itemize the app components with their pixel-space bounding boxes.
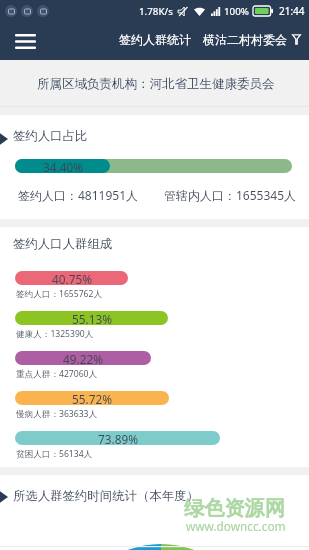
button[interactable]: 49.22%: [15, 351, 151, 365]
staticText: 横沽二村村委会: [203, 32, 287, 47]
button[interactable]: 55.72%: [15, 391, 169, 405]
staticText: 签约人口人群组成: [13, 236, 113, 252]
staticText: 重点人群：427060人: [16, 368, 98, 380]
button[interactable]: 40.75%: [15, 271, 128, 285]
staticText: 签约人口占比: [13, 128, 88, 144]
staticText: 健康人：1325390人: [16, 328, 94, 340]
staticText: 管辖内人口：1655345人: [164, 187, 297, 203]
staticText: 21:44: [279, 4, 305, 18]
button[interactable]: 横沽二村村委会: [203, 32, 301, 47]
staticText: 55.72%: [72, 391, 112, 405]
staticText: 100%: [224, 5, 249, 18]
staticText: 73.89%: [98, 431, 138, 445]
staticText: 49.22%: [63, 351, 103, 365]
staticText: 所属区域负责机构：河北省卫生健康委员会: [37, 76, 275, 92]
staticText: 1.78K/s: [139, 5, 173, 18]
staticText: 签约人口：4811951人: [18, 187, 139, 203]
staticText: 40.75%: [52, 271, 92, 285]
button[interactable]: Menu: [6, 22, 44, 60]
staticText: 贫困人口：56134人: [16, 448, 93, 460]
button[interactable]: 73.89%: [15, 431, 220, 445]
staticText: 签约人口：1655762人: [16, 288, 102, 300]
staticText: www.downcc.com: [186, 518, 286, 534]
staticText: 所选人群签约时间统计（本年度）: [13, 488, 199, 504]
staticText: 绿色资源网: [184, 496, 285, 521]
button[interactable]: [15, 159, 292, 173]
button[interactable]: 55.13%: [15, 311, 168, 325]
staticText: 34.40%: [43, 159, 83, 173]
staticText: 55.13%: [72, 311, 112, 325]
staticText: 签约人群统计: [119, 32, 191, 47]
button[interactable]: 签约人群统计: [119, 32, 191, 47]
staticText: 慢病人群：363633人: [16, 408, 98, 420]
